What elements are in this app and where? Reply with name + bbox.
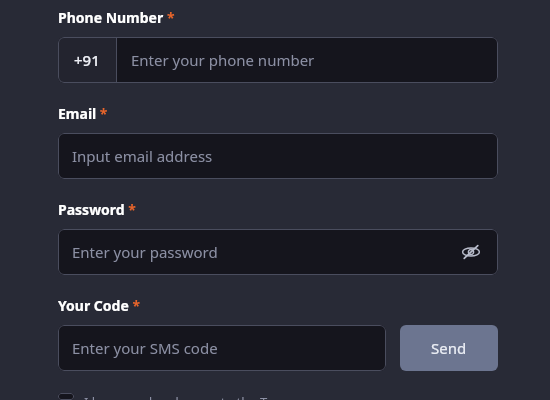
staticText: Password * — [58, 200, 136, 219]
button[interactable]: +91 — [58, 37, 498, 83]
staticText: +91 — [74, 50, 100, 70]
button[interactable]: Enter your password — [58, 229, 498, 275]
staticText: Your Code * — [58, 296, 140, 315]
button[interactable]: Enter your SMS code — [58, 325, 386, 371]
button[interactable]: Send — [400, 325, 498, 371]
staticText: Enter your SMS code — [72, 338, 218, 358]
staticText: Send — [431, 338, 467, 358]
button[interactable]: Show password — [458, 239, 484, 265]
staticText: Input email address — [72, 146, 213, 166]
staticText: Enter your phone number — [131, 50, 315, 70]
staticText: Enter your password — [72, 242, 458, 262]
staticText: I have read and agree to the Terms — [84, 393, 298, 400]
staticText: Phone Number * — [58, 8, 175, 27]
staticText: Email * — [58, 104, 108, 123]
button[interactable]: +91 — [58, 37, 116, 83]
button[interactable]: I have read and agree to the Terms — [58, 393, 498, 400]
button[interactable]: Input email address — [58, 133, 498, 179]
